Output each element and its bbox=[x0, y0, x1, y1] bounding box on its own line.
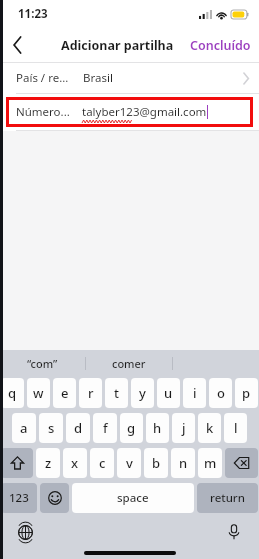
staticText: z bbox=[45, 454, 52, 472]
button[interactable]: g bbox=[120, 413, 143, 443]
staticText: m bbox=[204, 454, 217, 472]
button[interactable]: f bbox=[93, 413, 117, 443]
staticText: k bbox=[206, 419, 214, 437]
button[interactable]: z bbox=[36, 448, 60, 478]
button[interactable]: q bbox=[1, 378, 24, 408]
staticText: d bbox=[74, 419, 83, 437]
button[interactable]: j bbox=[172, 413, 195, 443]
staticText: x bbox=[71, 454, 79, 472]
staticText: Adicionar partilha bbox=[61, 37, 174, 54]
button[interactable]: comer bbox=[86, 350, 172, 376]
staticText: e bbox=[61, 384, 69, 402]
button[interactable]: Número... bbox=[6, 97, 253, 127]
button[interactable]: Shift bbox=[1, 448, 33, 478]
button[interactable]: c bbox=[90, 448, 114, 478]
button[interactable]: m bbox=[198, 448, 222, 478]
button[interactable]: Dictation bbox=[223, 521, 245, 543]
staticText: c bbox=[99, 454, 106, 472]
button[interactable]: Back bbox=[0, 28, 34, 62]
staticText: r bbox=[88, 384, 94, 402]
staticText: q bbox=[8, 384, 17, 402]
button[interactable]: a bbox=[12, 413, 36, 443]
staticText: return bbox=[210, 490, 245, 506]
staticText: w bbox=[33, 384, 44, 402]
button[interactable]: k bbox=[198, 413, 221, 443]
staticText: j bbox=[182, 419, 186, 437]
staticText: Concluído bbox=[190, 37, 251, 54]
button[interactable]: s bbox=[39, 413, 63, 443]
button[interactable]: v bbox=[117, 448, 141, 478]
button[interactable]: y bbox=[131, 378, 154, 408]
staticText: space bbox=[117, 490, 149, 506]
staticText: i bbox=[193, 384, 197, 402]
button[interactable]: Emoji bbox=[40, 483, 69, 513]
button[interactable]: e bbox=[53, 378, 76, 408]
button[interactable]: Backspace bbox=[225, 448, 258, 478]
staticText: s bbox=[48, 419, 55, 437]
button[interactable]: d bbox=[66, 413, 90, 443]
button[interactable]: space bbox=[72, 483, 194, 513]
staticText: o bbox=[217, 384, 225, 402]
button[interactable]: n bbox=[171, 448, 195, 478]
staticText: 123 bbox=[9, 490, 29, 506]
button[interactable]: l bbox=[224, 413, 247, 443]
staticText: t bbox=[114, 384, 119, 402]
button[interactable]: p bbox=[235, 378, 258, 408]
staticText: a bbox=[20, 419, 28, 437]
button[interactable]: b bbox=[144, 448, 168, 478]
button[interactable]: u bbox=[157, 378, 180, 408]
staticText: Número... bbox=[16, 104, 70, 120]
staticText: v bbox=[126, 454, 133, 472]
button[interactable]: 123 bbox=[1, 483, 37, 513]
staticText: l bbox=[234, 419, 238, 437]
staticText: g bbox=[127, 419, 136, 437]
button[interactable]: i bbox=[183, 378, 206, 408]
staticText: Brasil bbox=[83, 70, 113, 86]
button[interactable]: x bbox=[63, 448, 87, 478]
button[interactable]: País / re... bbox=[0, 63, 259, 93]
button[interactable]: w bbox=[27, 378, 50, 408]
button[interactable]: o bbox=[209, 378, 232, 408]
staticText: u bbox=[164, 384, 173, 402]
staticText: 11:23 bbox=[18, 6, 48, 22]
staticText: p bbox=[242, 384, 251, 402]
staticText: País / re... bbox=[16, 70, 69, 86]
staticText: “com” bbox=[27, 356, 58, 371]
staticText: talyber123@gmail.com bbox=[82, 104, 207, 120]
staticText: y bbox=[139, 384, 146, 402]
staticText: comer bbox=[112, 356, 146, 371]
staticText: b bbox=[152, 454, 161, 472]
button[interactable]: r bbox=[79, 378, 102, 408]
button[interactable]: “com” bbox=[0, 350, 85, 376]
button[interactable]: Concluído bbox=[188, 33, 253, 58]
staticText: n bbox=[179, 454, 188, 472]
staticText: h bbox=[153, 419, 162, 437]
button[interactable]: return bbox=[197, 483, 258, 513]
staticText: f bbox=[103, 419, 108, 437]
button[interactable]: h bbox=[146, 413, 169, 443]
button[interactable]: Change keyboard language bbox=[14, 521, 36, 543]
button[interactable]: t bbox=[105, 378, 128, 408]
